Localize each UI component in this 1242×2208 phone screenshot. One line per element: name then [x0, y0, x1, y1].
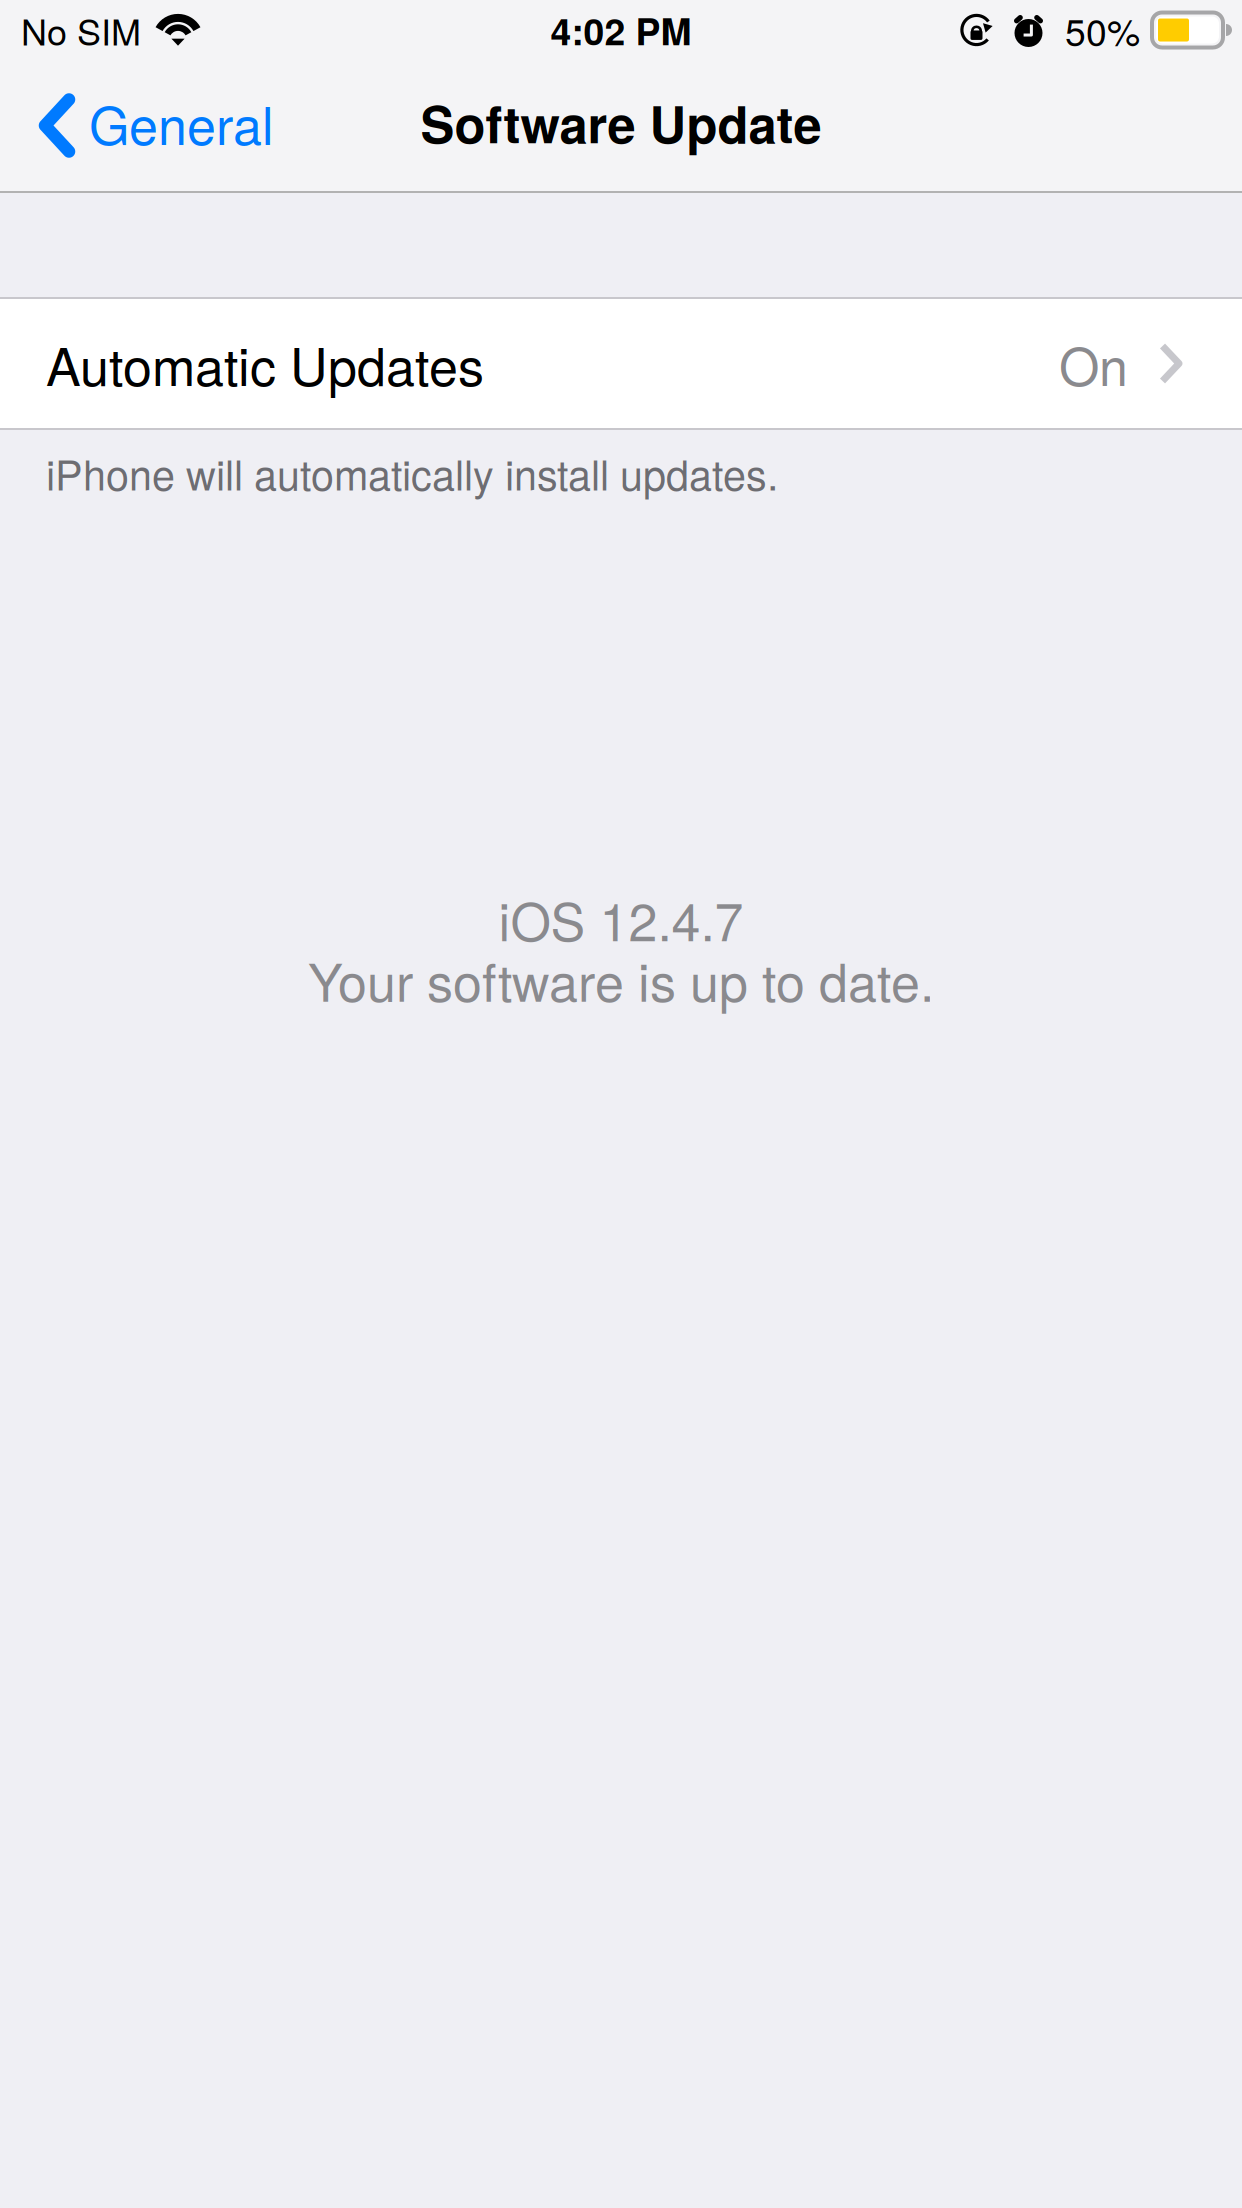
staticText: General: [89, 85, 274, 160]
button[interactable]: Automatic Updates: [0, 299, 1242, 428]
staticText: No SIM: [21, 4, 141, 56]
staticText: iOS 12.4.7: [498, 881, 743, 956]
staticText: Automatic Updates: [46, 326, 484, 401]
staticText: 4:02 PM: [550, 3, 691, 57]
button[interactable]: General: [0, 60, 298, 191]
staticText: iPhone will automatically install update…: [46, 443, 778, 502]
staticText: Your software is up to date.: [308, 942, 934, 1016]
staticText: 50%: [1065, 3, 1140, 57]
staticText: On: [1059, 326, 1128, 401]
staticText: Software Update: [420, 86, 821, 159]
